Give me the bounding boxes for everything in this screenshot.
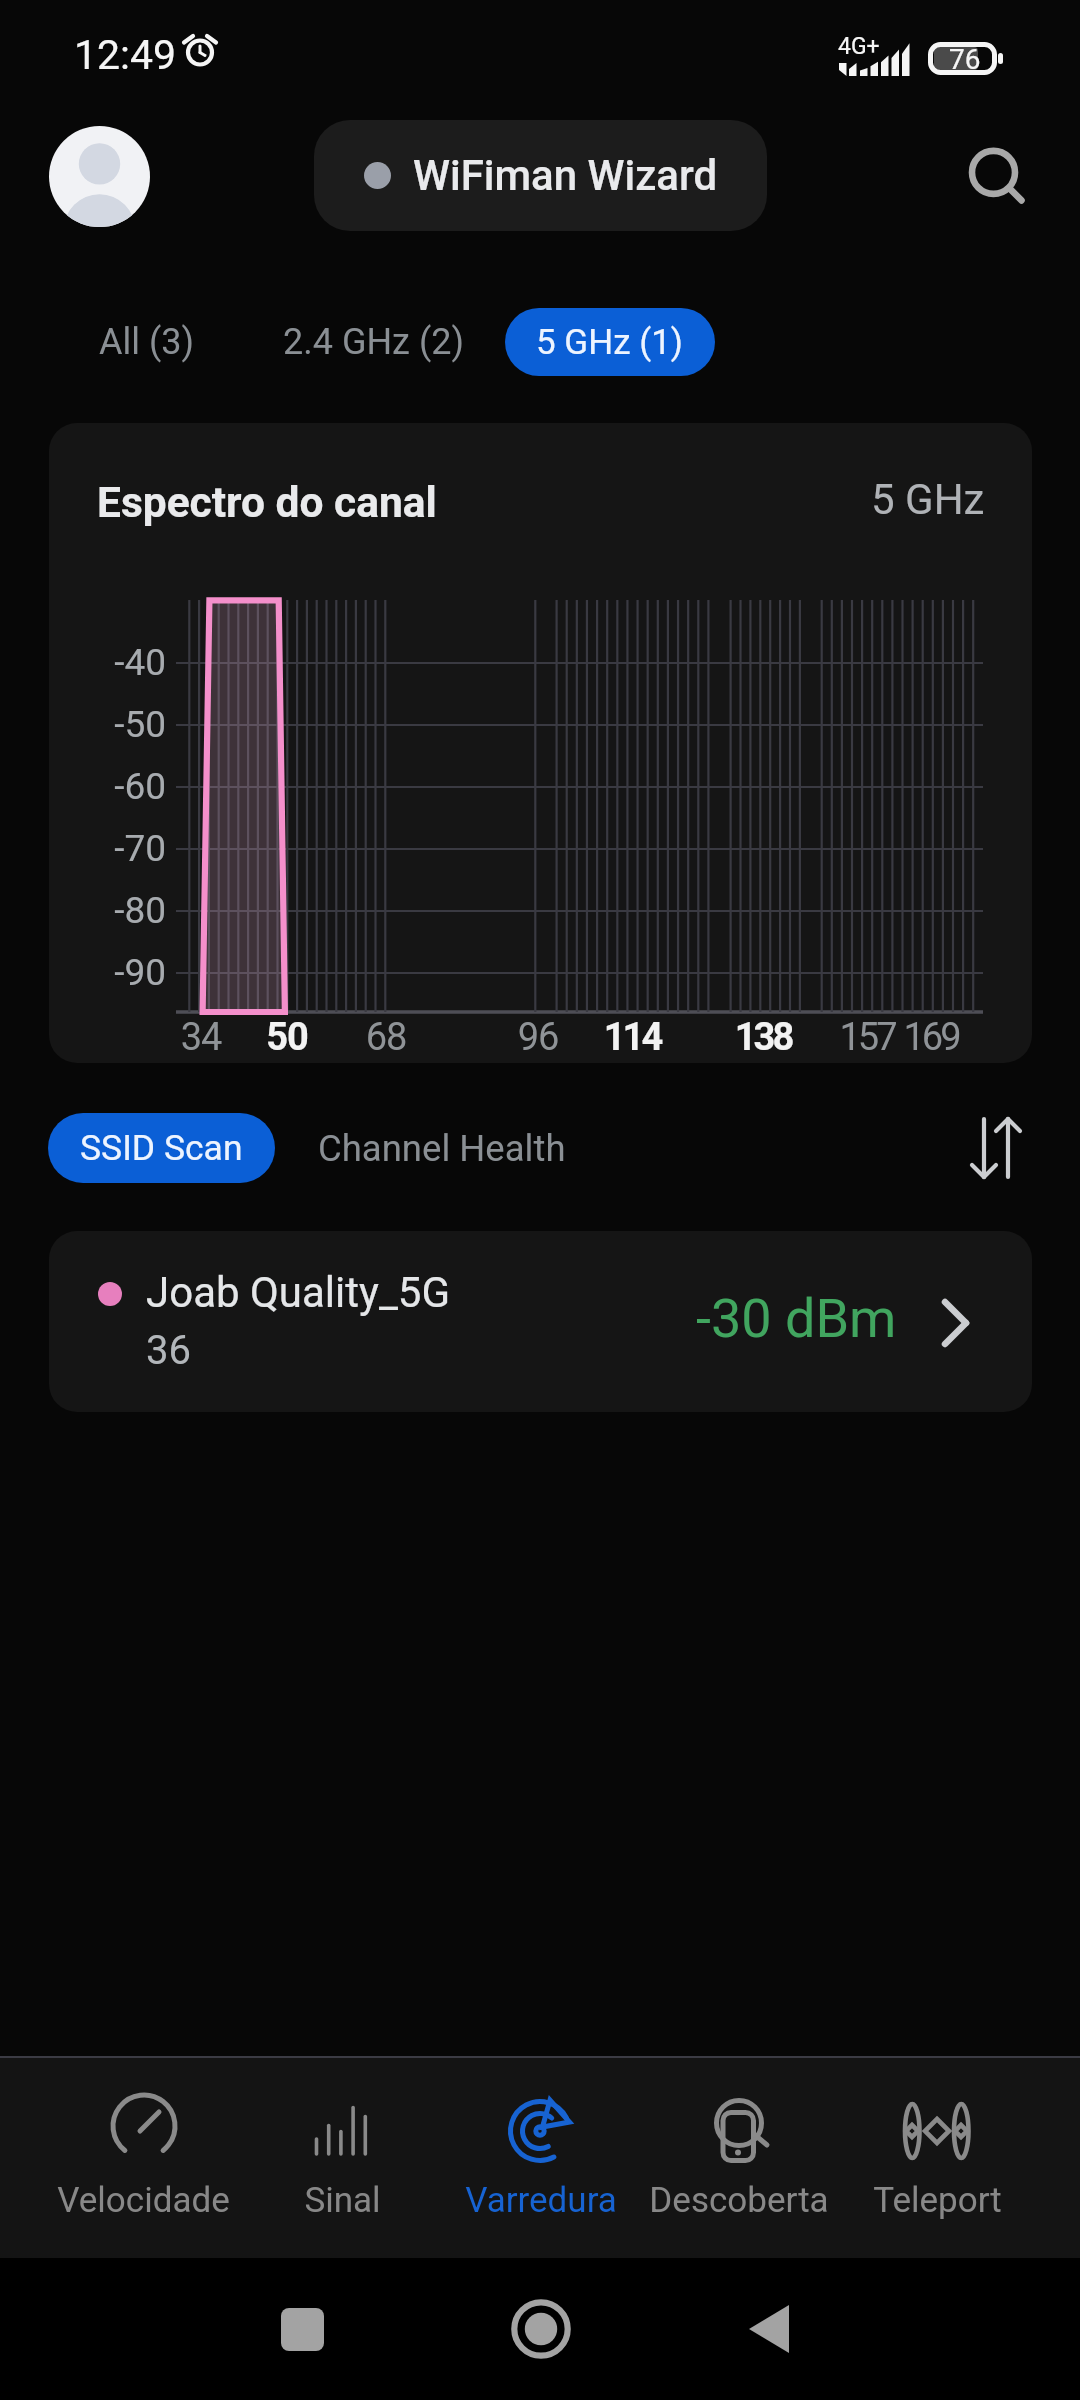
button[interactable]: Sinal xyxy=(243,2058,442,2258)
staticText: Velocidade xyxy=(57,2180,230,2221)
staticText: -80 xyxy=(76,889,166,932)
staticText: 96 xyxy=(493,1015,583,1060)
button[interactable]: Search xyxy=(952,136,1032,216)
staticText: -60 xyxy=(76,765,166,808)
staticText: 50 xyxy=(242,1015,332,1060)
staticText: 169 xyxy=(886,1015,976,1060)
staticText: 76 xyxy=(949,43,981,76)
button[interactable]: Sort xyxy=(950,1104,1040,1194)
staticText: 68 xyxy=(341,1015,431,1060)
button[interactable]: 5 GHz (1) xyxy=(505,308,715,376)
staticText: 12:49 xyxy=(74,31,177,79)
staticText: 114 xyxy=(587,1015,677,1060)
staticText: WiFiman Wizard xyxy=(413,151,718,200)
staticText: 36 xyxy=(146,1327,191,1374)
staticText: 157 xyxy=(822,1015,912,1060)
staticText: 5 GHz xyxy=(871,475,985,524)
button[interactable]: Varredura xyxy=(442,2058,640,2258)
button[interactable]: Velocidade xyxy=(44,2058,243,2258)
staticText: -40 xyxy=(76,641,166,684)
staticText: Espectro do canal xyxy=(97,478,437,528)
staticText: -70 xyxy=(76,827,166,870)
staticText: Teleport xyxy=(873,2180,1002,2221)
staticText: Varredura xyxy=(465,2180,617,2221)
staticText: Channel Health xyxy=(318,1127,566,1170)
staticText: Joab Quality_5G xyxy=(146,1268,451,1317)
button[interactable]: Descoberta xyxy=(640,2058,838,2258)
staticText: -30 dBm xyxy=(696,1287,897,1350)
staticText: Sinal xyxy=(304,2180,381,2221)
button[interactable]: Home xyxy=(491,2279,591,2379)
button[interactable]: Joab Quality_5G xyxy=(49,1231,1032,1412)
button[interactable]: Teleport xyxy=(838,2058,1036,2258)
button[interactable]: All (3) xyxy=(80,300,214,384)
staticText: -90 xyxy=(76,951,166,994)
staticText: 4G+ xyxy=(838,33,880,60)
staticText: 5 GHz (1) xyxy=(536,322,684,363)
staticText: 2.4 GHz (2) xyxy=(283,321,464,363)
button[interactable]: Recents xyxy=(252,2279,352,2379)
staticText: 34 xyxy=(156,1015,246,1060)
staticText: Descoberta xyxy=(649,2180,829,2221)
button[interactable]: Profile xyxy=(49,126,150,227)
staticText: -50 xyxy=(76,703,166,746)
button[interactable]: 2.4 GHz (2) xyxy=(264,300,483,384)
staticText: All (3) xyxy=(99,321,195,363)
button[interactable]: Channel Health xyxy=(300,1106,584,1190)
staticText: 138 xyxy=(718,1015,808,1060)
staticText: SSID Scan xyxy=(80,1127,243,1169)
button[interactable]: Back xyxy=(726,2279,826,2379)
button[interactable]: SSID Scan xyxy=(48,1113,275,1183)
button[interactable]: WiFiman Wizard xyxy=(314,120,767,231)
